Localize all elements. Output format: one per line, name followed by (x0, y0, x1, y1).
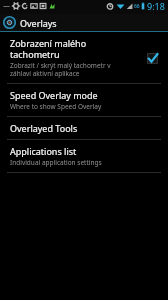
button[interactable]: Applications list (0, 140, 168, 172)
staticText: Applications list (10, 145, 77, 157)
button[interactable]: Zobrazení malého tachometru (0, 32, 168, 83)
button[interactable]: Overlays (0, 14, 168, 31)
staticText: Zobrazení malého tachometru (10, 37, 138, 60)
staticText: Zobrazit / skrýt malý tachometr v záhlav… (10, 61, 111, 78)
staticText: Speed Overlay mode (10, 89, 98, 101)
staticText: Overlayed Tools (10, 122, 78, 134)
staticText: Overlays (20, 17, 57, 29)
button[interactable]: Speed Overlay mode (0, 84, 168, 116)
staticText: 66 (134, 3, 140, 10)
staticText: Individual application settings (10, 158, 102, 167)
staticText: Where to show Speed Overlay (10, 102, 102, 111)
staticText: 9:18 (147, 0, 165, 12)
button[interactable]: Overlayed Tools (0, 117, 168, 139)
button[interactable]: Checked (144, 50, 160, 66)
